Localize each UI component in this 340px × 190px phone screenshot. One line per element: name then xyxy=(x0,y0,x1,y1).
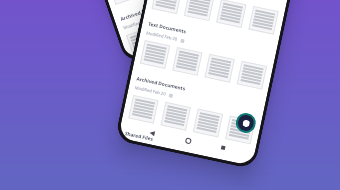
button[interactable]: Home xyxy=(182,134,194,146)
staticText: Archived Documents xyxy=(136,75,186,92)
button[interactable] xyxy=(214,0,244,28)
staticText: Text Documents xyxy=(147,20,187,35)
button[interactable]: Recents xyxy=(217,142,229,154)
button[interactable]: Home xyxy=(180,22,192,35)
button[interactable] xyxy=(151,0,182,14)
staticText: Modified Feb 20 xyxy=(123,15,155,31)
button[interactable]: Back xyxy=(147,33,159,46)
button[interactable] xyxy=(160,102,191,131)
button[interactable] xyxy=(216,0,246,28)
staticText: Modified Feb 20 xyxy=(134,85,166,98)
button[interactable] xyxy=(204,54,235,83)
staticText: Archived Documents xyxy=(119,0,169,23)
button[interactable]: Recents xyxy=(212,11,224,24)
button[interactable] xyxy=(237,61,267,90)
button[interactable]: New document xyxy=(236,113,255,132)
button[interactable] xyxy=(126,27,156,58)
button[interactable]: New document xyxy=(227,0,246,11)
button[interactable] xyxy=(193,109,223,137)
button[interactable] xyxy=(128,95,159,124)
button[interactable] xyxy=(108,0,138,5)
staticText: Modified Feb 20 xyxy=(146,30,178,43)
button[interactable] xyxy=(172,47,202,76)
button[interactable] xyxy=(155,17,186,48)
button[interactable]: Back xyxy=(146,127,158,138)
button[interactable] xyxy=(248,6,279,35)
button[interactable] xyxy=(140,40,170,69)
button[interactable] xyxy=(225,115,255,144)
button[interactable] xyxy=(185,7,215,38)
button[interactable] xyxy=(184,0,214,21)
staticText: Shared Files xyxy=(124,130,154,143)
